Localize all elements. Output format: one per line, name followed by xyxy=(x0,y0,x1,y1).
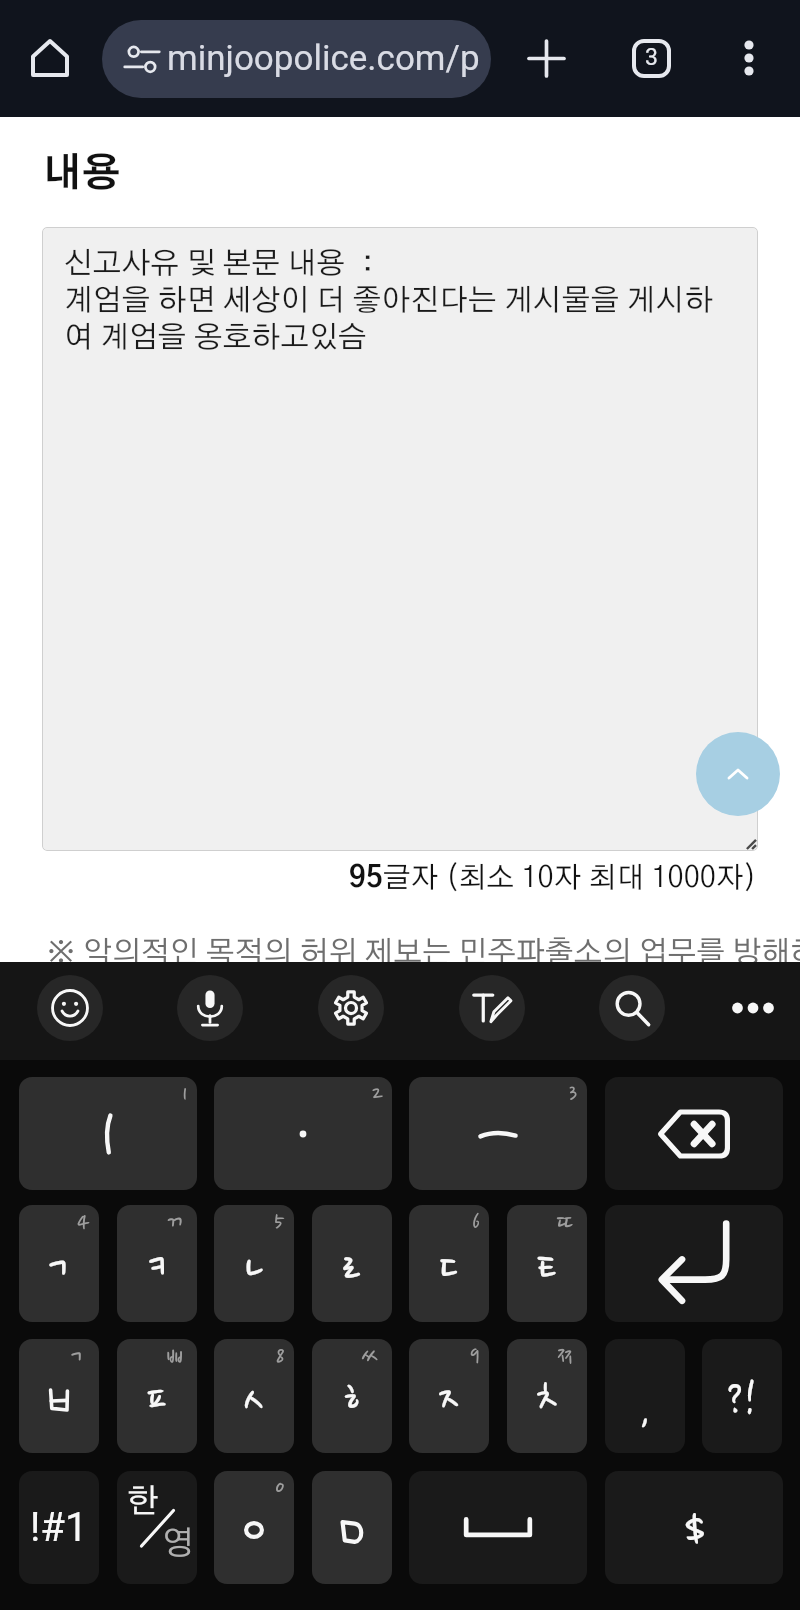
button[interactable]: ㄲ xyxy=(117,1205,197,1322)
button[interactable]: 4 xyxy=(19,1205,99,1322)
staticText: 5 xyxy=(274,1209,285,1236)
button[interactable]: 9 xyxy=(409,1339,489,1453)
button[interactable]: Space xyxy=(409,1471,587,1584)
button[interactable]: Ieung xyxy=(214,1471,294,1584)
staticText: ㅅ xyxy=(232,1377,276,1423)
staticText: ?! xyxy=(726,1375,758,1425)
staticText: ㄱ xyxy=(37,1245,81,1291)
staticText: ㅎ xyxy=(330,1377,374,1423)
staticText: ㄱ xyxy=(64,1343,90,1370)
button[interactable]: Enter xyxy=(605,1205,783,1322)
button[interactable]: 5 xyxy=(214,1205,294,1322)
button[interactable]: Vowel i xyxy=(19,1077,197,1190)
staticText: ㄴ xyxy=(232,1245,276,1291)
button[interactable]: Korean/English xyxy=(117,1471,197,1584)
button[interactable]: More xyxy=(720,975,786,1041)
staticText: 내용 xyxy=(43,155,121,194)
staticText: ※ 악의적인 목적의 허위 제보는 민주파출소의 업무를 방해하 xyxy=(46,938,800,968)
staticText: 9 xyxy=(470,1343,480,1370)
staticText: ㅌ xyxy=(525,1245,569,1291)
staticText: ㄸ xyxy=(552,1209,578,1236)
staticText: ㄷ xyxy=(427,1245,471,1291)
staticText: ㅉ xyxy=(552,1343,578,1370)
staticText: 신고사유 및 본문 내용 ： 계엄을 하면 세상이 더 좋아진다는 게시물을 게… xyxy=(64,249,754,353)
button[interactable]: ㄹ xyxy=(312,1205,392,1322)
staticText: ㄹ xyxy=(330,1245,374,1291)
staticText: ㄲ xyxy=(162,1209,188,1236)
staticText: !#1 xyxy=(30,1504,88,1551)
staticText: 한 xyxy=(127,1486,159,1519)
button[interactable]: Settings xyxy=(318,975,384,1041)
staticText: , xyxy=(639,1383,651,1433)
button[interactable]: Tabs xyxy=(615,22,687,94)
button[interactable]: Voice input xyxy=(177,975,243,1041)
button[interactable]: $ xyxy=(605,1471,783,1584)
staticText: ㅊ xyxy=(525,1377,569,1423)
button[interactable]: Scroll to top xyxy=(696,732,780,816)
button[interactable]: Bieup xyxy=(19,1339,99,1453)
button[interactable]: Text editing xyxy=(459,975,525,1041)
button[interactable]: Emoji xyxy=(37,975,103,1041)
button[interactable]: !#1 xyxy=(19,1471,99,1584)
button[interactable]: Search xyxy=(599,975,665,1041)
staticText: ㅆ xyxy=(357,1343,383,1370)
staticText: ㅍ xyxy=(135,1377,179,1423)
button[interactable]: Vowel eu xyxy=(409,1077,587,1190)
staticText: ㅃ xyxy=(162,1343,188,1370)
staticText: $ xyxy=(684,1507,705,1557)
staticText: 3 xyxy=(569,1081,578,1108)
button[interactable]: Mieum xyxy=(312,1471,392,1584)
button[interactable]: ㄸ xyxy=(507,1205,587,1322)
button[interactable]: 8 xyxy=(214,1339,294,1453)
button[interactable]: New tab xyxy=(510,22,582,94)
staticText: ㅈ xyxy=(427,1377,471,1423)
button[interactable]: , xyxy=(605,1339,685,1453)
staticText: 3 xyxy=(645,44,658,71)
button[interactable]: Home xyxy=(14,22,86,94)
staticText: 95글자 (최소 10자 최대 1000자) xyxy=(349,864,757,893)
button[interactable]: ㅉ xyxy=(507,1339,587,1453)
button[interactable]: ㅃ xyxy=(117,1339,197,1453)
staticText: 8 xyxy=(276,1343,285,1370)
button[interactable]: More options xyxy=(713,22,785,94)
button[interactable]: ?! xyxy=(702,1339,782,1453)
staticText: 영 xyxy=(162,1528,194,1561)
staticText: minjoopolice.com/p xyxy=(167,38,480,79)
button[interactable]: ㅆ xyxy=(312,1339,392,1453)
staticText: 0 xyxy=(275,1475,285,1502)
staticText: 6 xyxy=(472,1209,480,1236)
button[interactable]: Backspace xyxy=(605,1077,783,1190)
staticText: 2 xyxy=(372,1081,383,1108)
button[interactable]: 신고사유 및 본문 내용 ： 계엄을 하면 세상이 더 좋아진다는 게시물을 게… xyxy=(42,227,758,851)
staticText: 4 xyxy=(77,1209,90,1236)
staticText: ㅋ xyxy=(135,1245,179,1291)
button[interactable]: minjoopolice.com/p xyxy=(102,20,491,98)
button[interactable]: Dot xyxy=(214,1077,392,1190)
staticText: 1 xyxy=(182,1081,188,1108)
button[interactable]: 6 xyxy=(409,1205,489,1322)
